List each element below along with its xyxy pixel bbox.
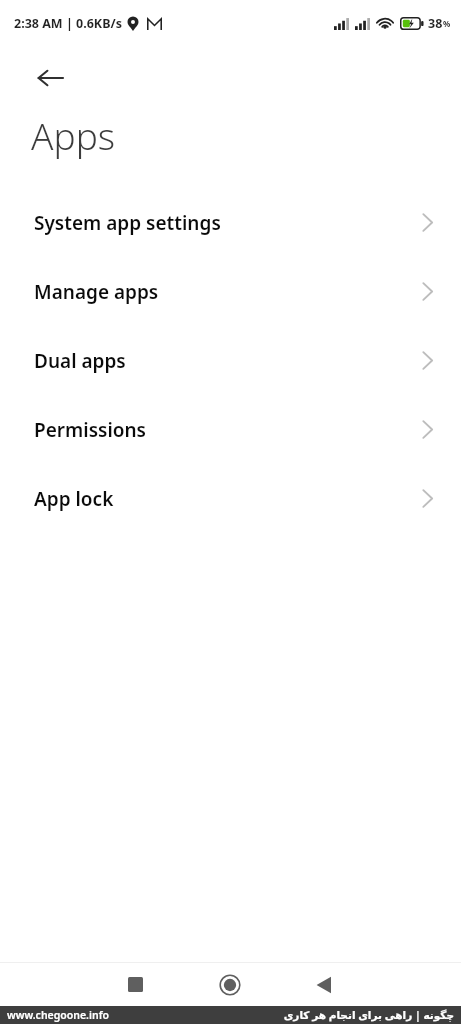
staticText: چگونه | راهی برای انجام هر کاری [283, 1008, 454, 1022]
staticText: % [443, 18, 451, 29]
staticText: Apps [31, 110, 116, 160]
staticText: Dual apps [34, 348, 422, 374]
staticText: www.chegoone.info [7, 1008, 110, 1022]
staticText: App lock [34, 486, 422, 512]
button[interactable]: Recent apps [104, 963, 166, 1006]
button[interactable]: System app settings [0, 188, 461, 257]
button[interactable]: Dual apps [0, 326, 461, 395]
staticText: 2:38 AM | 0.6KB/s [14, 15, 122, 32]
button[interactable]: Manage apps [0, 257, 461, 326]
staticText: Manage apps [34, 279, 422, 305]
button[interactable]: Back [292, 963, 354, 1006]
button[interactable]: Permissions [0, 395, 461, 464]
staticText: System app settings [34, 210, 422, 236]
staticText: Permissions [34, 417, 422, 443]
button[interactable]: Back [19, 50, 81, 106]
staticText: 38 [428, 15, 443, 32]
button[interactable]: Home [199, 963, 261, 1006]
button[interactable]: App lock [0, 464, 461, 533]
